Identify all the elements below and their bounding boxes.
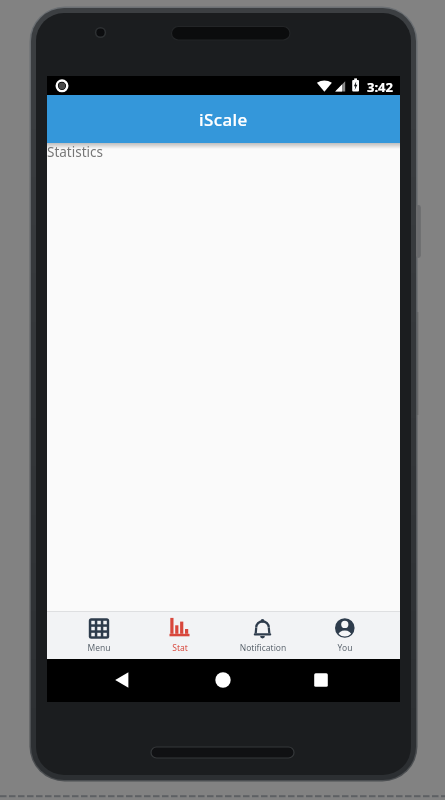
staticText: 3:42 <box>367 78 393 96</box>
button[interactable] <box>208 665 238 695</box>
button[interactable]: You <box>304 611 386 659</box>
button[interactable]: Notification <box>222 611 304 659</box>
button[interactable] <box>107 665 137 695</box>
button[interactable] <box>306 665 336 695</box>
staticText: Statistics <box>47 143 103 161</box>
staticText: Stat <box>139 642 221 654</box>
button[interactable]: Stat <box>139 611 221 659</box>
staticText: Notification <box>222 642 304 654</box>
staticText: iScale <box>199 108 248 131</box>
button[interactable]: Menu <box>58 611 140 659</box>
staticText: Menu <box>58 642 140 654</box>
staticText: You <box>304 642 386 654</box>
